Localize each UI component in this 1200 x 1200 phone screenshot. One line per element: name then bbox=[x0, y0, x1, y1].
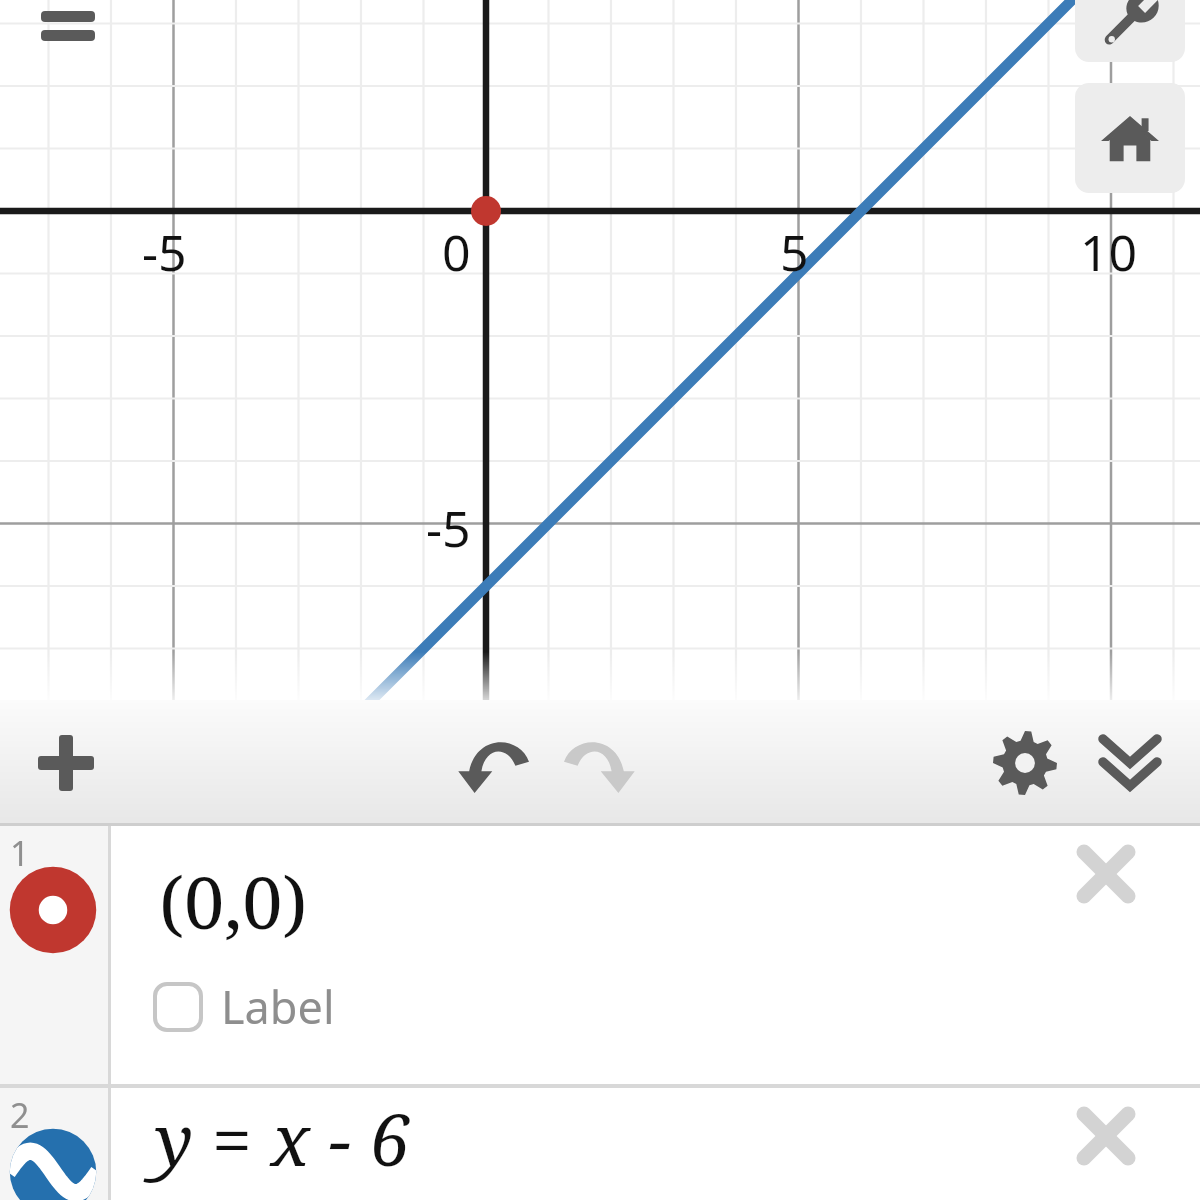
staticText: 0 bbox=[442, 218, 471, 286]
staticText: 1 bbox=[10, 830, 30, 876]
button[interactable]: Collapse bbox=[1084, 717, 1176, 809]
button[interactable]: Label bbox=[155, 976, 335, 1037]
staticText: -5 bbox=[426, 494, 471, 562]
button[interactable]: Redo bbox=[552, 717, 644, 809]
staticText: 2 bbox=[10, 1092, 30, 1138]
button[interactable]: Undo bbox=[449, 717, 541, 809]
button[interactable]: Tools bbox=[1075, 0, 1185, 62]
staticText: 10 bbox=[1080, 218, 1138, 286]
staticText: Label bbox=[221, 976, 335, 1037]
button[interactable]: 2 bbox=[0, 1088, 1200, 1200]
button[interactable]: Settings bbox=[979, 717, 1071, 809]
button[interactable]: 1 bbox=[0, 826, 1200, 1084]
button[interactable]: Home bbox=[1075, 83, 1185, 193]
staticText: -5 bbox=[142, 218, 187, 286]
button[interactable]: Delete row 2 bbox=[1060, 1090, 1152, 1182]
staticText: y = x − 6 bbox=[155, 1089, 411, 1187]
button[interactable]: Menu bbox=[20, 0, 116, 48]
staticText: 5 bbox=[780, 218, 809, 286]
button[interactable]: Add expression bbox=[20, 717, 112, 809]
button[interactable]: Delete row 1 bbox=[1060, 828, 1152, 920]
staticText: (0,0) bbox=[159, 852, 308, 950]
